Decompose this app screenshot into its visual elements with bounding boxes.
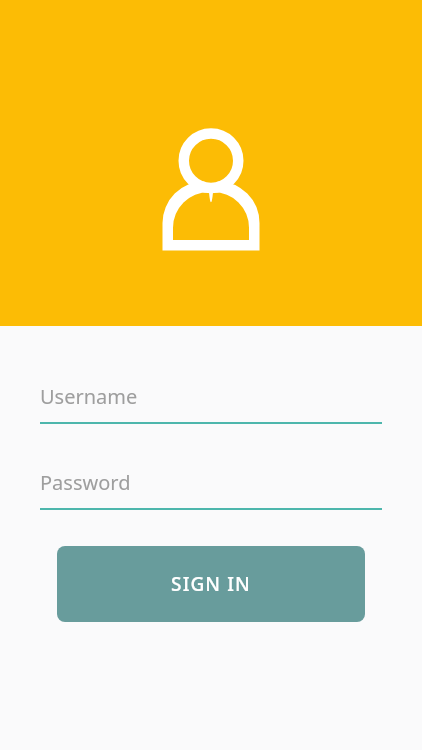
button[interactable]: Password (0, 469, 422, 510)
staticText: Password (40, 469, 131, 496)
button[interactable]: Username (0, 383, 422, 424)
staticText: SIGN IN (171, 571, 251, 597)
button[interactable]: SIGN IN (57, 546, 365, 622)
other: Account avatar (161, 127, 261, 255)
staticText: Username (40, 383, 138, 410)
